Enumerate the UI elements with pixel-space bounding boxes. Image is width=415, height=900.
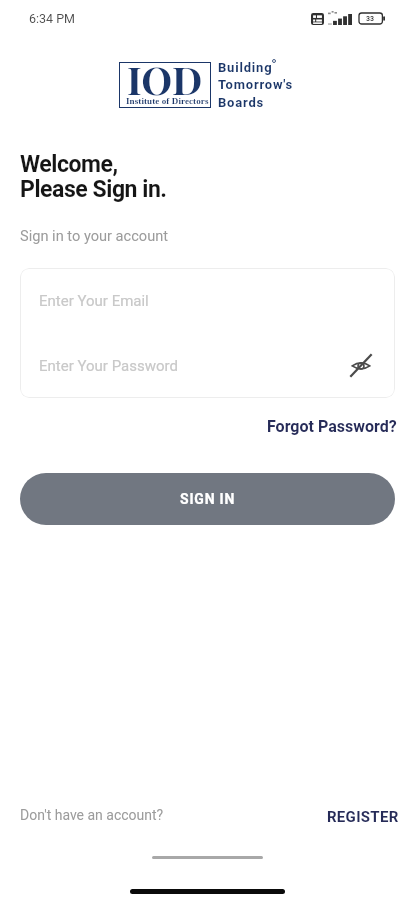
staticText: SIGN IN (180, 491, 236, 507)
staticText: Forgot Password? (267, 417, 397, 436)
staticText: Institute of Directors (126, 96, 209, 106)
staticText: Building (218, 60, 273, 75)
staticText: REGISTER (327, 808, 399, 826)
staticText: Welcome, (20, 151, 118, 178)
button[interactable]: Show password (344, 347, 382, 385)
button[interactable]: Enter Your Password (20, 333, 395, 398)
button[interactable]: REGISTER (322, 803, 404, 831)
button[interactable]: Forgot Password? (262, 412, 402, 441)
staticText: Enter Your Email (39, 292, 149, 310)
staticText: Enter Your Password (39, 357, 178, 375)
button[interactable]: Enter Your Email (20, 268, 395, 333)
staticText: Please Sign in. (20, 176, 167, 203)
staticText: Boards (218, 95, 265, 110)
staticText: Sign in to your account (20, 227, 169, 244)
staticText: 33 (366, 15, 375, 23)
staticText: Tomorrow's (218, 77, 294, 92)
button[interactable]: SIGN IN (20, 473, 395, 525)
staticText: 6:34 PM (29, 11, 76, 26)
staticText: IOD (127, 53, 203, 105)
staticText: Don't have an account? (20, 807, 164, 823)
